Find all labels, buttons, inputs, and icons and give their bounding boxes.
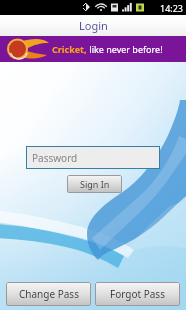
button[interactable]: Change Pass xyxy=(6,282,91,306)
staticText: Login xyxy=(79,18,108,33)
button[interactable]: Forgot Pass xyxy=(95,282,180,306)
staticText: Change Pass xyxy=(19,287,79,301)
button[interactable]: Password xyxy=(27,147,159,168)
staticText: Password xyxy=(32,151,78,165)
staticText: like never before! xyxy=(87,43,163,55)
staticText: Forgot Pass xyxy=(110,287,165,301)
button[interactable]: Sign In xyxy=(67,175,122,193)
staticText: 14:23 xyxy=(160,2,184,14)
staticText: Sign In xyxy=(80,178,110,190)
staticText: Cricket, xyxy=(52,43,87,55)
